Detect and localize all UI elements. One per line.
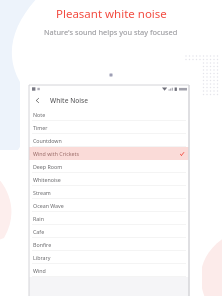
button[interactable]: Whitenoise [29,173,189,186]
button[interactable]: Stream [29,186,189,199]
staticText: Cafe [33,228,45,235]
staticText: Nature's sound helps you stay focused [44,27,178,37]
staticText: White Noise [50,96,89,105]
staticText: Stream [33,189,51,196]
staticText: Rain [33,215,44,222]
button[interactable]: Deep Room [29,160,189,173]
staticText: Wind with Crickets [33,150,80,157]
button[interactable]: Timer [29,121,189,134]
button[interactable]: Countdown [29,134,189,147]
button[interactable]: Library [29,251,189,264]
button[interactable]: Cafe [29,225,189,238]
staticText: Whitenoise [33,176,61,183]
button[interactable]: Ocean Wave [29,199,189,212]
staticText: Wind [33,267,46,274]
staticText: Timer [33,124,48,131]
button[interactable]: Note [29,108,189,121]
button[interactable]: Rain [29,212,189,225]
button[interactable]: Wind with Crickets [29,147,189,160]
staticText: Bonfire [33,241,52,248]
staticText: Note [33,111,46,118]
staticText: Library [33,254,51,261]
button[interactable]: Back [29,92,45,108]
staticText: Ocean Wave [33,202,64,209]
staticText: Deep Room [33,163,63,170]
staticText: Pleasant white noise [56,6,167,22]
staticText: Countdown [33,137,62,144]
button[interactable]: Bonfire [29,238,189,251]
button[interactable]: Wind [29,264,189,277]
